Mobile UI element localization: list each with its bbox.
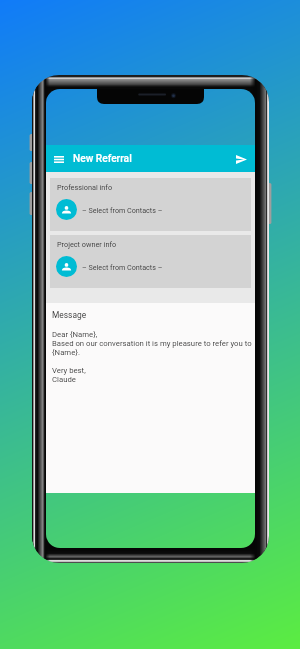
button[interactable]: Send referral: [231, 149, 251, 169]
button[interactable]: Open navigation menu: [50, 149, 68, 169]
staticText: New Referral: [73, 153, 132, 165]
staticText: Message: [52, 310, 87, 320]
button[interactable]: Project owner info: [50, 235, 251, 288]
staticText: Professional info: [57, 183, 113, 192]
staticText: Project owner info: [57, 240, 117, 249]
staticText: Dear {Name}, Based on our conversation i…: [52, 330, 252, 384]
button[interactable]: Professional info: [50, 178, 251, 231]
staticText: – Select from Contacts –: [82, 206, 163, 214]
staticText: – Select from Contacts –: [82, 263, 163, 271]
